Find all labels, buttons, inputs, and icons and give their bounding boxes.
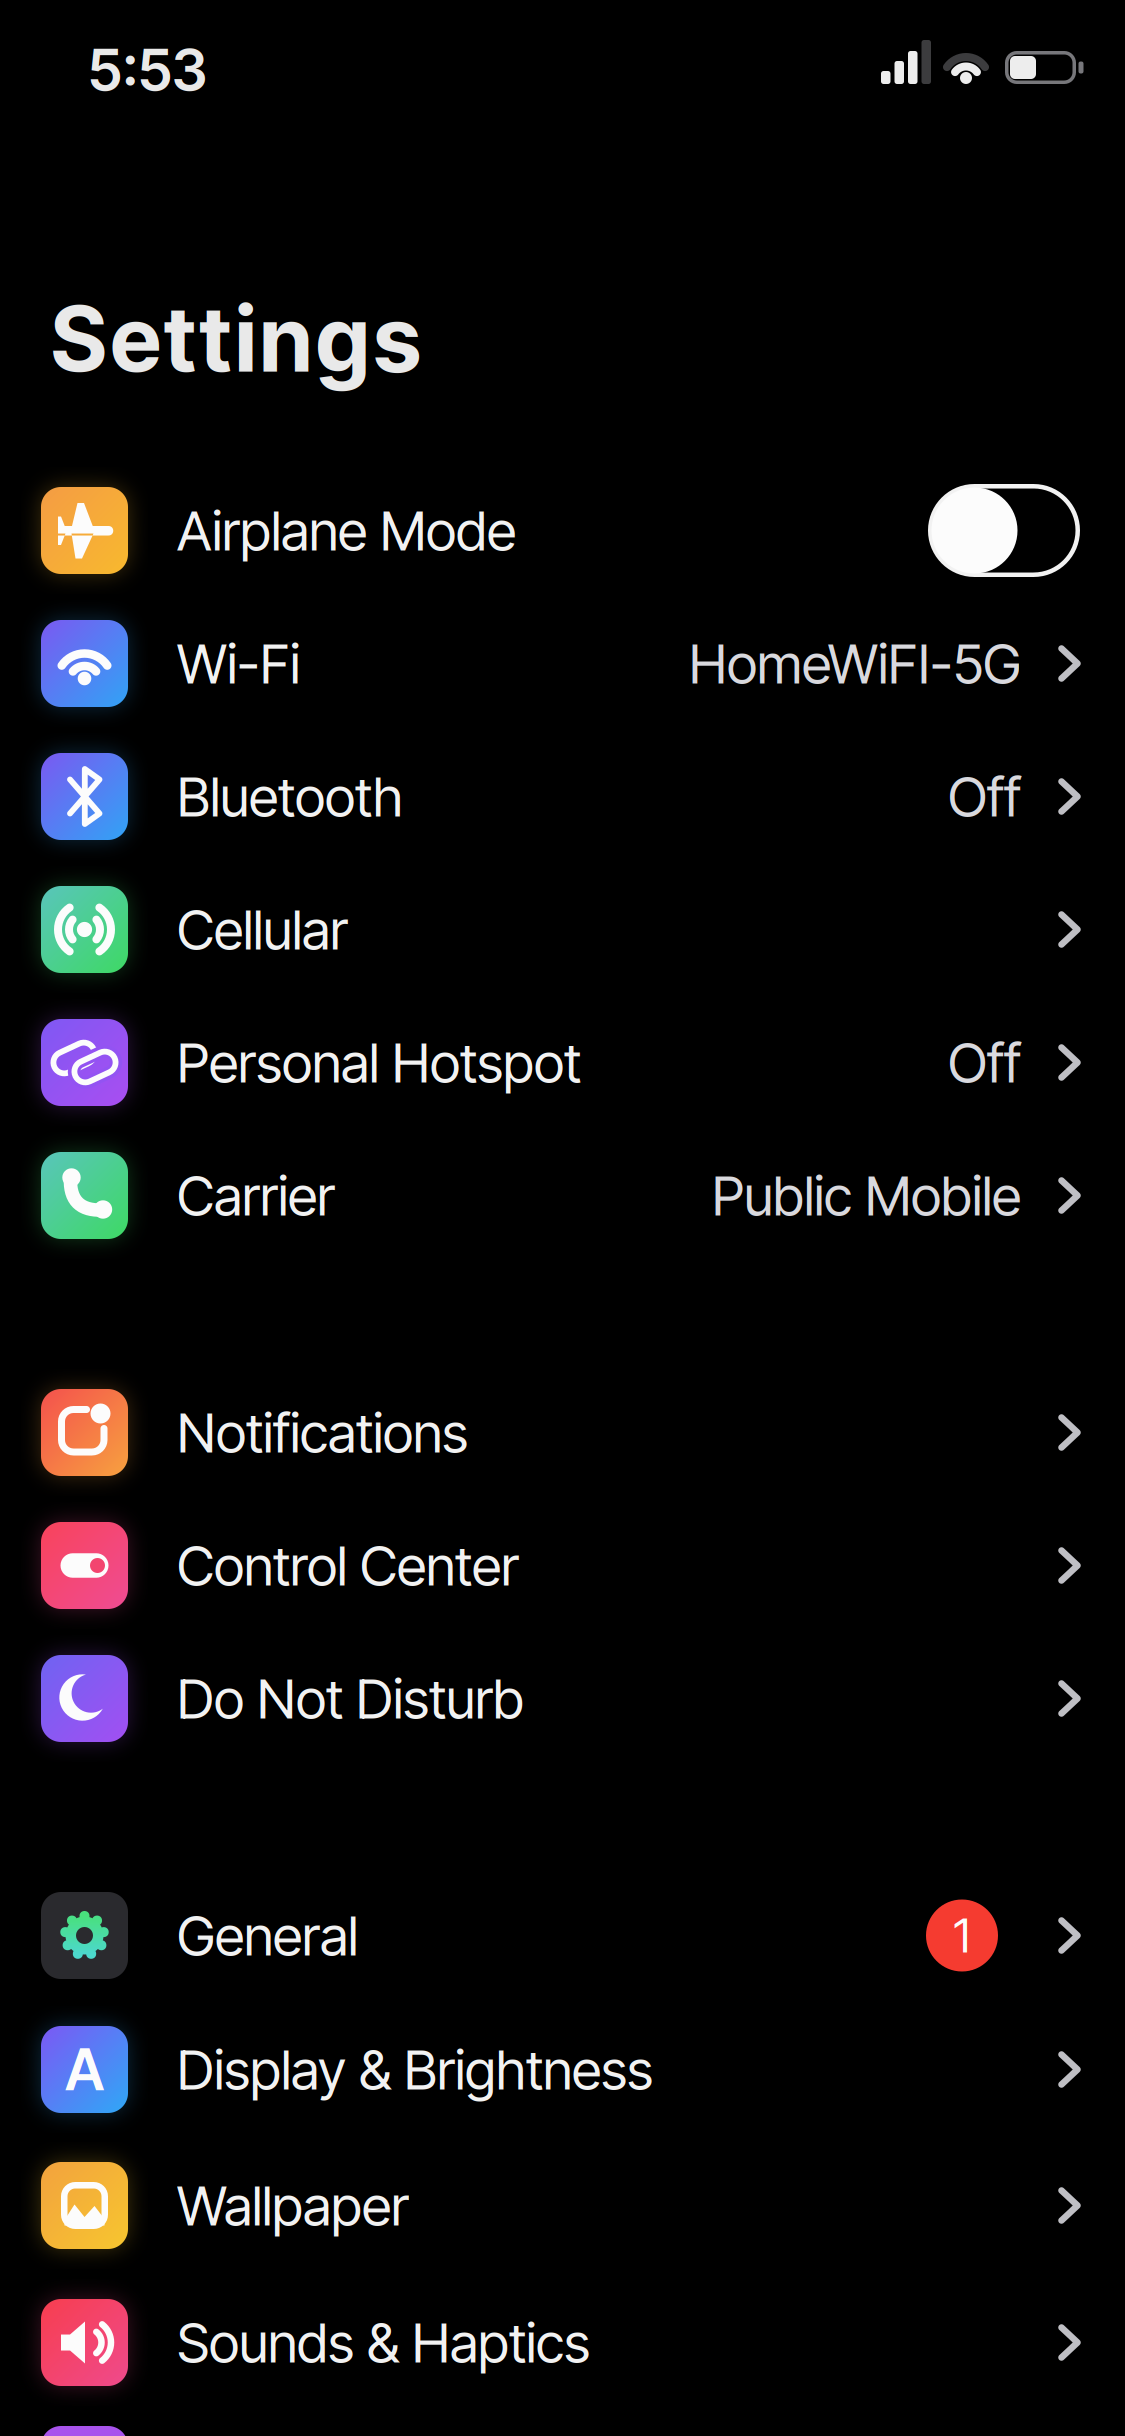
button[interactable]: Do Not Disturb (0, 1632, 1125, 1765)
staticText: HomeWiFI-5G (689, 631, 1021, 696)
button[interactable]: General (0, 1869, 1125, 2002)
staticText: Off (948, 1030, 1021, 1095)
button[interactable]: Wi-Fi (0, 597, 1125, 730)
staticText: Sounds & Haptics (177, 2310, 590, 2375)
staticText: General (177, 1903, 358, 1968)
staticText: Notifications (177, 1400, 468, 1465)
staticText: Wallpaper (177, 2173, 409, 2238)
staticText: Airplane Mode (177, 498, 516, 563)
button[interactable]: Cellular (0, 863, 1125, 996)
button[interactable]: A (0, 2003, 1125, 2136)
staticText: A (65, 2036, 104, 2103)
staticText: 1 (953, 1908, 970, 1963)
button[interactable]: Wallpaper (0, 2139, 1125, 2272)
button[interactable]: Carrier (0, 1129, 1125, 1262)
button[interactable]: Screen Time (41, 2426, 128, 2436)
button[interactable]: Sounds & Haptics (0, 2276, 1125, 2409)
staticText: 5:53 (88, 36, 207, 104)
staticText: Cellular (177, 897, 348, 962)
staticText: Carrier (177, 1163, 335, 1228)
button[interactable]: Airplane Mode (0, 464, 1125, 597)
staticText: Personal Hotspot (177, 1030, 581, 1095)
staticText: Public Mobile (712, 1163, 1021, 1228)
staticText: Off (948, 764, 1021, 829)
staticText: Control Center (177, 1533, 519, 1598)
staticText: Wi-Fi (177, 631, 300, 696)
button[interactable]: Control Center (0, 1499, 1125, 1632)
button[interactable]: Personal Hotspot (0, 996, 1125, 1129)
button[interactable]: Notifications (0, 1366, 1125, 1499)
staticText: Bluetooth (177, 764, 403, 829)
staticText: Display & Brightness (177, 2037, 653, 2102)
staticText: Do Not Disturb (177, 1666, 524, 1731)
staticText: Settings (51, 286, 420, 391)
button[interactable]: Bluetooth (0, 730, 1125, 863)
